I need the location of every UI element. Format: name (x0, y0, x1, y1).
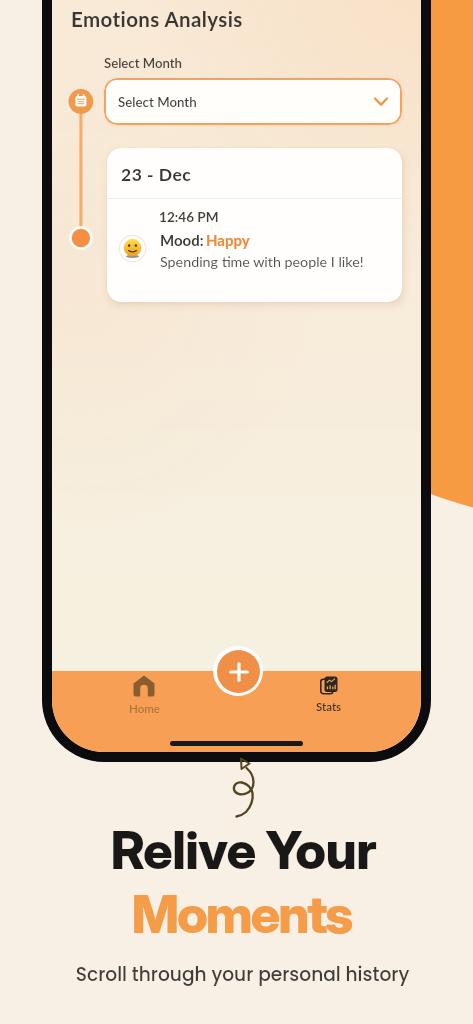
staticText: Select Month (118, 94, 197, 110)
staticText: Emotions Analysis (71, 7, 243, 32)
staticText: Relive Your (7, 819, 473, 882)
button[interactable]: Home (120, 675, 168, 716)
staticText: Happy (206, 231, 250, 249)
staticText: Stats (316, 700, 342, 714)
staticText: 12:46 PM (159, 209, 219, 225)
staticText: Select Month (104, 55, 183, 71)
staticText: Home (129, 702, 160, 716)
staticText: 23 - Dec (121, 164, 192, 185)
staticText: Scroll through your personal history (6, 961, 473, 987)
button[interactable]: Select Month (104, 78, 402, 125)
staticText: Mood: (160, 231, 204, 249)
button[interactable]: 23 - Dec (107, 148, 402, 302)
staticText: Spending time with people I like! (160, 253, 364, 270)
button[interactable] (213, 646, 263, 696)
button[interactable]: Stats (305, 676, 353, 714)
staticText: Moments (5, 883, 473, 946)
